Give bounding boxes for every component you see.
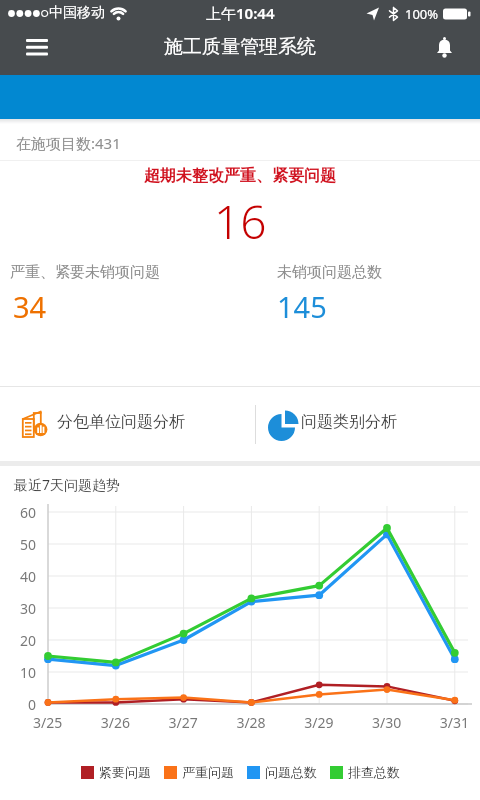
staticText: 在施项目数:431 [16, 133, 121, 153]
staticText: 超期未整改严重、紧要问题 [144, 166, 336, 186]
staticText: 问题类别分析 [301, 412, 397, 432]
staticText: 未销项问题总数 [277, 263, 382, 282]
staticText: 最近7天问题趋势 [14, 475, 121, 494]
staticText: 145 [277, 287, 327, 326]
staticText: 施工质量管理系统 [164, 35, 316, 59]
staticText: 16 [214, 190, 267, 253]
staticText: 上午10:44 [206, 3, 275, 23]
staticText: 严重、紧要未销项问题 [10, 263, 160, 282]
staticText: 中国移动 [49, 4, 105, 22]
staticText: 分包单位问题分析 [57, 412, 185, 432]
staticText: 34 [13, 287, 47, 326]
staticText: 排查总数 [348, 764, 400, 780]
staticText: 100% [405, 5, 439, 23]
staticText: 紧要问题 [99, 764, 151, 780]
staticText: 问题总数 [265, 764, 317, 780]
staticText: 严重问题 [182, 764, 234, 780]
